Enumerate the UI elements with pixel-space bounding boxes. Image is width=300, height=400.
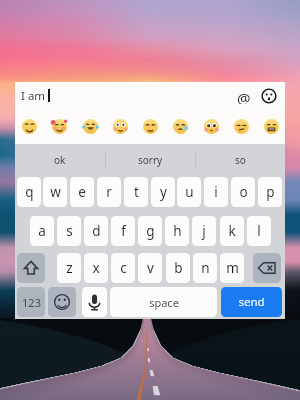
button[interactable]: Emoji 2	[51, 118, 68, 135]
staticText: j	[202, 222, 206, 240]
staticText: send	[238, 294, 265, 310]
button[interactable]: m	[220, 253, 244, 283]
staticText: e	[78, 183, 86, 201]
button[interactable]: a	[30, 216, 54, 246]
staticText: t	[134, 183, 139, 201]
staticText: m	[226, 259, 239, 277]
button[interactable]: Emoji 8	[233, 118, 250, 135]
staticText: u	[185, 183, 194, 201]
button[interactable]: z	[57, 253, 81, 283]
staticText: x	[92, 259, 100, 277]
button[interactable]: s	[57, 216, 81, 246]
staticText: b	[174, 259, 183, 277]
staticText: @	[237, 88, 251, 104]
staticText: g	[146, 222, 155, 240]
staticText: q	[25, 183, 34, 201]
button[interactable]: Emoji 6	[172, 118, 189, 135]
button[interactable]: c	[111, 253, 135, 283]
staticText: n	[201, 259, 210, 277]
button[interactable]: Emoji 3	[82, 118, 99, 135]
button[interactable]: Emoji 9	[263, 118, 280, 135]
staticText: c	[120, 259, 127, 277]
staticText: v	[147, 259, 154, 277]
staticText: o	[239, 183, 248, 201]
button[interactable]: send	[221, 287, 282, 317]
staticText: ok	[54, 153, 66, 167]
staticText: k	[228, 222, 236, 240]
staticText: 123	[22, 295, 41, 310]
button[interactable]: q	[17, 177, 41, 207]
staticText: space	[149, 295, 179, 310]
button[interactable]: h	[165, 216, 189, 246]
button[interactable]: v	[138, 253, 162, 283]
staticText: i	[214, 183, 218, 201]
button[interactable]: u	[177, 177, 201, 207]
button[interactable]: d	[84, 216, 108, 246]
button[interactable]: r	[97, 177, 121, 207]
staticText: r	[106, 183, 112, 201]
button[interactable]: so	[195, 144, 285, 175]
button[interactable]: j	[192, 216, 216, 246]
button[interactable]: x	[84, 253, 108, 283]
staticText: z	[66, 259, 73, 277]
button[interactable]: sorry	[105, 144, 195, 175]
staticText: h	[173, 222, 182, 240]
button[interactable]: Emoji picker	[261, 88, 277, 104]
button[interactable]: k	[220, 216, 244, 246]
button[interactable]: 123	[17, 287, 45, 317]
staticText: so	[235, 153, 246, 167]
button[interactable]: Shift	[17, 253, 45, 283]
button[interactable]: Voice input	[82, 287, 107, 317]
button[interactable]: f	[111, 216, 135, 246]
button[interactable]: o	[231, 177, 255, 207]
button[interactable]: b	[166, 253, 190, 283]
button[interactable]: Backspace	[253, 253, 281, 283]
staticText: y	[160, 183, 167, 201]
staticText: s	[66, 222, 73, 240]
button[interactable]: e	[70, 177, 94, 207]
staticText: w	[50, 183, 61, 201]
button[interactable]: Emoji 7	[203, 118, 220, 135]
button[interactable]: p	[258, 177, 282, 207]
staticText: a	[38, 222, 46, 240]
button[interactable]: t	[124, 177, 148, 207]
button[interactable]: space	[110, 287, 217, 317]
staticText: f	[121, 222, 126, 240]
button[interactable]: Emoji 5	[142, 118, 159, 135]
staticText: d	[92, 222, 101, 240]
button[interactable]: Emoji keyboard	[48, 287, 76, 317]
button[interactable]: Emoji 1	[21, 118, 38, 135]
button[interactable]: Emoji 4	[112, 118, 129, 135]
staticText: p	[266, 183, 275, 201]
staticText: sorry	[138, 153, 163, 167]
staticText: I am	[21, 88, 46, 104]
button[interactable]: y	[151, 177, 175, 207]
button[interactable]: Mention	[236, 88, 252, 104]
button[interactable]: l	[247, 216, 271, 246]
button[interactable]: n	[193, 253, 217, 283]
button[interactable]: g	[138, 216, 162, 246]
button[interactable]: w	[43, 177, 67, 207]
button[interactable]: i	[204, 177, 228, 207]
button[interactable]: ok	[15, 144, 105, 175]
staticText: l	[257, 222, 261, 240]
